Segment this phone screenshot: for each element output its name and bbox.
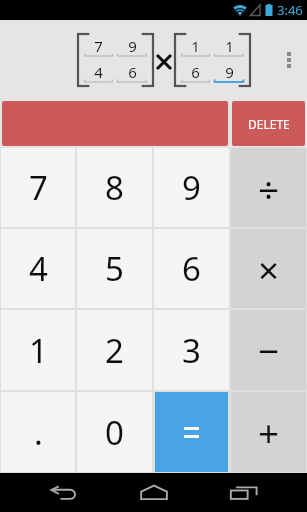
- staticText: 7: [94, 36, 103, 56]
- button[interactable]: 4: [84, 59, 113, 85]
- button[interactable]: Recents: [218, 473, 270, 512]
- staticText: 6: [191, 62, 200, 82]
- staticText: 1: [191, 36, 200, 56]
- button[interactable]: Back: [37, 473, 89, 512]
- button[interactable]: .: [1, 392, 75, 472]
- button[interactable]: 7: [1, 148, 75, 227]
- button[interactable]: ÷: [231, 148, 306, 227]
- staticText: 1: [29, 328, 48, 373]
- button[interactable]: DELETE: [232, 101, 305, 146]
- staticText: 4: [29, 246, 48, 291]
- staticText: 9: [128, 36, 137, 56]
- button[interactable]: 1: [181, 33, 210, 59]
- button[interactable]: 7: [84, 33, 113, 59]
- button[interactable]: 1: [1, 310, 75, 390]
- button[interactable]: 5: [77, 229, 152, 308]
- staticText: 8: [105, 165, 124, 210]
- button[interactable]: +: [231, 392, 306, 472]
- button[interactable]: 4: [1, 229, 75, 308]
- staticText: .: [34, 410, 43, 455]
- staticText: 5: [105, 246, 124, 291]
- staticText: 1: [225, 36, 234, 56]
- button[interactable]: 0: [77, 392, 152, 472]
- button[interactable]: 1: [214, 33, 244, 59]
- button[interactable]: 9: [214, 59, 244, 85]
- staticText: 4: [94, 62, 103, 82]
- button[interactable]: Equals: [155, 392, 228, 472]
- staticText: 7: [29, 165, 48, 210]
- staticText: 2: [105, 328, 124, 373]
- staticText: 6: [182, 246, 201, 291]
- button[interactable]: 9: [117, 33, 147, 59]
- button[interactable]: 8: [77, 148, 152, 227]
- staticText: 9: [225, 62, 234, 82]
- button[interactable]: 3: [154, 310, 229, 390]
- staticText: ×: [258, 244, 280, 294]
- button[interactable]: More options: [271, 36, 307, 84]
- staticText: 3: [182, 328, 201, 373]
- button[interactable]: 9: [154, 148, 229, 227]
- button[interactable]: 6: [154, 229, 229, 308]
- button[interactable]: ×: [231, 229, 306, 308]
- staticText: 9: [182, 165, 201, 210]
- staticText: DELETE: [248, 116, 290, 132]
- button[interactable]: Home: [128, 473, 180, 512]
- staticText: 0: [105, 410, 124, 455]
- staticText: 3:46: [277, 1, 303, 19]
- button[interactable]: −: [231, 310, 306, 390]
- staticText: 6: [128, 62, 137, 82]
- button[interactable]: 6: [181, 59, 210, 85]
- staticText: +: [258, 407, 280, 457]
- staticText: −: [258, 325, 280, 375]
- button[interactable]: 6: [117, 59, 147, 85]
- button[interactable]: 2: [77, 310, 152, 390]
- staticText: ÷: [258, 163, 280, 213]
